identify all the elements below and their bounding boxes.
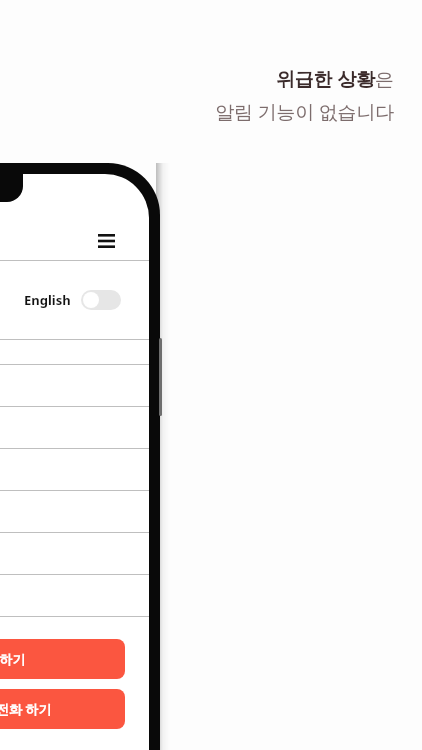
button[interactable]: 전화 하기 <box>0 639 125 679</box>
button[interactable]: Menu <box>91 226 121 256</box>
button[interactable]: English <box>0 261 121 339</box>
staticText: 알림 기능이 없습니다 <box>215 99 394 125</box>
staticText: 긴급전화 하기 <box>0 700 52 718</box>
staticText: 위급한 상황 <box>276 66 375 92</box>
staticText: 전화 하기 <box>0 650 26 668</box>
staticText: 은 <box>375 68 394 92</box>
button[interactable]: 긴급전화 하기 <box>0 689 125 729</box>
staticText: English <box>24 291 71 309</box>
